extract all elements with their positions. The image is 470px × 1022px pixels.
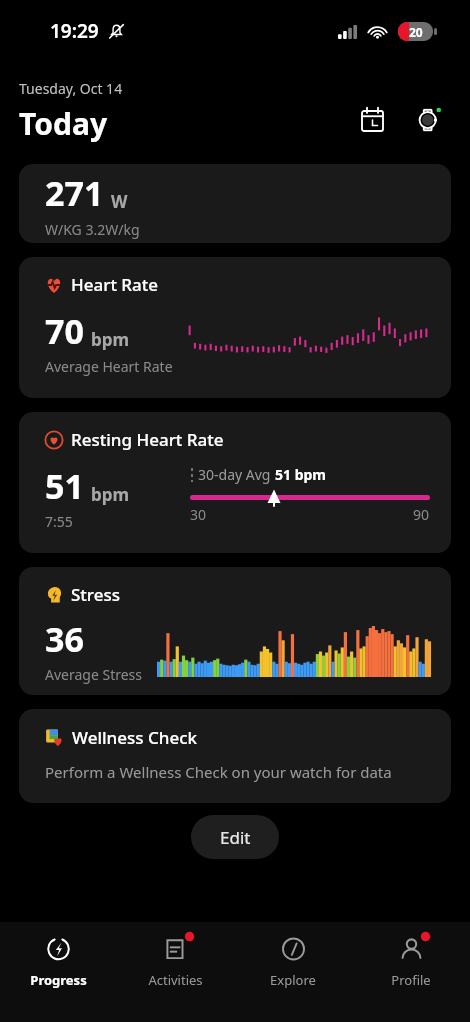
staticText: Average Stress (45, 665, 143, 684)
staticText: 90 (413, 505, 430, 524)
button[interactable]: Stress (19, 567, 451, 695)
button[interactable]: Wellness Check (19, 709, 451, 803)
staticText: Heart Rate (71, 273, 159, 296)
staticText: Wellness Check (72, 726, 198, 749)
button[interactable]: Heart Rate (19, 257, 451, 398)
button[interactable]: Edit (191, 815, 279, 859)
staticText: Tuesday, Oct 14 (19, 79, 123, 98)
staticText: 51 (45, 463, 84, 509)
button[interactable]: Calendar (350, 97, 394, 141)
staticText: 30-day Avg (198, 465, 275, 484)
staticText: W/KG 3.2W/kg (45, 220, 140, 239)
button[interactable]: Explore (234, 922, 352, 1022)
staticText: Stress (71, 583, 120, 606)
staticText: Today (19, 103, 108, 144)
staticText: 271 (45, 170, 104, 216)
staticText: bpm (91, 483, 130, 506)
staticText: W (111, 190, 128, 213)
staticText: 7:55 (45, 512, 73, 531)
staticText: 70 (45, 308, 84, 354)
staticText: Resting Heart Rate (71, 428, 224, 451)
button[interactable]: 271 (19, 164, 451, 243)
staticText: 51 bpm (275, 465, 327, 484)
staticText: Profile (391, 971, 431, 989)
button[interactable]: Activities (117, 922, 234, 1022)
button[interactable]: Resting Heart Rate (19, 412, 451, 553)
staticText: 36 (45, 616, 84, 662)
staticText: 19:29 (50, 18, 99, 44)
staticText: Explore (270, 971, 316, 989)
button[interactable]: Profile (352, 922, 470, 1022)
staticText: Perform a Wellness Check on your watch f… (45, 762, 392, 782)
staticText: 30 (190, 505, 207, 524)
staticText: Edit (220, 826, 251, 849)
staticText: 20 (409, 24, 423, 40)
button[interactable]: Watch (406, 97, 450, 141)
button[interactable]: Progress (0, 922, 117, 1022)
staticText: Average Heart Rate (45, 357, 173, 376)
staticText: Activities (148, 971, 203, 989)
staticText: bpm (91, 328, 130, 351)
staticText: Progress (30, 971, 87, 989)
